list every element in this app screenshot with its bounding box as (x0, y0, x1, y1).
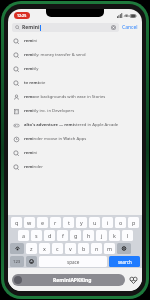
staticText: s (35, 232, 38, 239)
staticText: g (74, 232, 78, 239)
staticText: tv remiote (24, 80, 46, 86)
staticText: 123 (13, 259, 21, 265)
button[interactable]: n (91, 243, 102, 254)
button[interactable]: Cancel (122, 24, 138, 31)
staticText: b (82, 245, 86, 252)
staticText: t (68, 219, 70, 226)
staticText: remini (24, 38, 38, 44)
staticText: x (43, 245, 46, 252)
staticText: i (107, 219, 109, 226)
button[interactable]: i (102, 217, 113, 228)
staticText: remitly inc. in Developers (24, 108, 75, 114)
staticText: Remini (22, 24, 40, 31)
button[interactable]: a (18, 230, 29, 241)
staticText: 12:25 (17, 13, 27, 18)
staticText: o (119, 219, 123, 226)
button[interactable]: j (96, 230, 107, 241)
staticText: j (101, 232, 103, 239)
staticText: v (69, 245, 72, 252)
staticText: ReminiAPKKing (53, 277, 92, 284)
button[interactable]: g (70, 230, 81, 241)
button[interactable]: w (24, 217, 35, 228)
button[interactable]: u (89, 217, 100, 228)
staticText: d (48, 232, 52, 239)
button[interactable]: Like (128, 275, 138, 285)
button[interactable]: remini (8, 146, 142, 160)
staticText: m (107, 245, 113, 252)
button[interactable]: y (76, 217, 87, 228)
button[interactable]: search (109, 256, 140, 267)
button[interactable]: q (11, 217, 22, 228)
staticText: l (127, 232, 129, 239)
staticText: remini (24, 150, 38, 156)
button[interactable]: z (26, 243, 37, 254)
button[interactable]: s (31, 230, 42, 241)
button[interactable]: c (52, 243, 63, 254)
staticText: remitly (24, 66, 39, 72)
button[interactable]: reminder (8, 160, 142, 174)
button[interactable]: o (115, 217, 126, 228)
staticText: Cancel (122, 24, 138, 31)
button[interactable]: d (44, 230, 55, 241)
staticText: c (56, 245, 59, 252)
staticText: alto's adventure — remistered in Apple A… (24, 122, 119, 128)
button[interactable]: ReminiAPKKing (14, 274, 123, 286)
button[interactable]: k (109, 230, 120, 241)
staticText: z (30, 245, 33, 252)
button[interactable]: Clear text (111, 25, 116, 30)
staticText: remove backgrounds with ease in Stories (24, 94, 106, 100)
button[interactable]: Remini (15, 23, 116, 32)
staticText: remitly: money transfer & send (24, 52, 86, 58)
staticText: y (80, 219, 83, 226)
staticText: r (54, 219, 57, 226)
staticText: reminder moose in Watch Apps (24, 136, 87, 142)
button[interactable]: b (78, 243, 89, 254)
staticText: h (87, 232, 91, 239)
button[interactable]: 123 (10, 256, 24, 267)
button[interactable]: l (122, 230, 133, 241)
button[interactable]: remove backgrounds with ease in Stories (8, 90, 142, 104)
button[interactable]: Shift (10, 243, 24, 254)
button[interactable]: t (63, 217, 74, 228)
staticText: f (62, 232, 64, 239)
button[interactable]: m (104, 243, 115, 254)
button[interactable]: remitly: money transfer & send (8, 48, 142, 62)
staticText: u (93, 219, 97, 226)
staticText: k (113, 232, 116, 239)
staticText: n (95, 245, 99, 252)
button[interactable]: e (37, 217, 48, 228)
staticText: space (67, 259, 80, 265)
button[interactable]: Backspace (117, 243, 131, 254)
button[interactable]: alto's adventure — remistered in Apple A… (8, 118, 142, 132)
staticText: q (15, 219, 19, 226)
staticText: reminder (24, 164, 43, 170)
button[interactable]: h (83, 230, 94, 241)
staticText: w (27, 219, 32, 226)
button[interactable]: p (128, 217, 139, 228)
button[interactable]: f (57, 230, 68, 241)
button[interactable]: r (50, 217, 61, 228)
button[interactable]: remitly inc. in Developers (8, 104, 142, 118)
button[interactable]: remitly (8, 62, 142, 76)
button[interactable]: v (65, 243, 76, 254)
button[interactable]: remini (8, 34, 142, 48)
button[interactable]: reminder moose in Watch Apps (8, 132, 142, 146)
button[interactable]: Emoji (26, 256, 37, 267)
button[interactable]: space (39, 256, 107, 267)
button[interactable]: tv remiote (8, 76, 142, 90)
staticText: search (118, 259, 132, 265)
staticText: a (22, 232, 26, 239)
staticText: e (41, 219, 45, 226)
staticText: p (132, 219, 136, 226)
button[interactable]: x (39, 243, 50, 254)
